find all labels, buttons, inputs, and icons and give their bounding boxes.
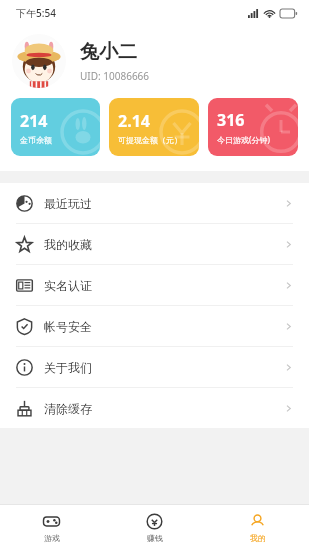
- staticText: 214: [20, 110, 48, 132]
- staticText: 兔小二: [80, 40, 137, 64]
- staticText: 游戏: [44, 533, 60, 543]
- staticText: 帐号安全: [44, 319, 92, 334]
- staticText: 今日游戏(分钟): [217, 134, 270, 145]
- button[interactable]: 最近玩过: [0, 183, 309, 223]
- button[interactable]: 帐号安全: [0, 306, 309, 346]
- staticText: 金币余额: [20, 135, 52, 145]
- button[interactable]: 214: [11, 98, 100, 156]
- staticText: 清除缓存: [44, 401, 92, 416]
- staticText: 最近玩过: [44, 196, 92, 211]
- staticText: UID: 10086666: [80, 69, 150, 83]
- staticText: 2.14: [118, 110, 150, 132]
- staticText: 我的: [250, 533, 266, 543]
- staticText: 赚钱: [147, 533, 163, 543]
- button[interactable]: 2.14: [109, 98, 199, 156]
- button[interactable]: 赚钱: [103, 505, 206, 550]
- staticText: 316: [217, 109, 245, 131]
- button[interactable]: 实名认证: [0, 265, 309, 305]
- button[interactable]: 我的收藏: [0, 224, 309, 264]
- staticText: 关于我们: [44, 360, 92, 375]
- staticText: 实名认证: [44, 278, 92, 293]
- staticText: 我的收藏: [44, 237, 92, 252]
- button[interactable]: 我的: [206, 505, 309, 550]
- button[interactable]: 兔小二: [0, 26, 309, 98]
- button[interactable]: 316: [208, 98, 298, 156]
- button[interactable]: 清除缓存: [0, 388, 309, 428]
- button[interactable]: 游戏: [0, 505, 103, 550]
- button[interactable]: 关于我们: [0, 347, 309, 387]
- staticText: 下午5:54: [16, 6, 56, 20]
- staticText: 可提现金额（元）: [118, 135, 182, 145]
